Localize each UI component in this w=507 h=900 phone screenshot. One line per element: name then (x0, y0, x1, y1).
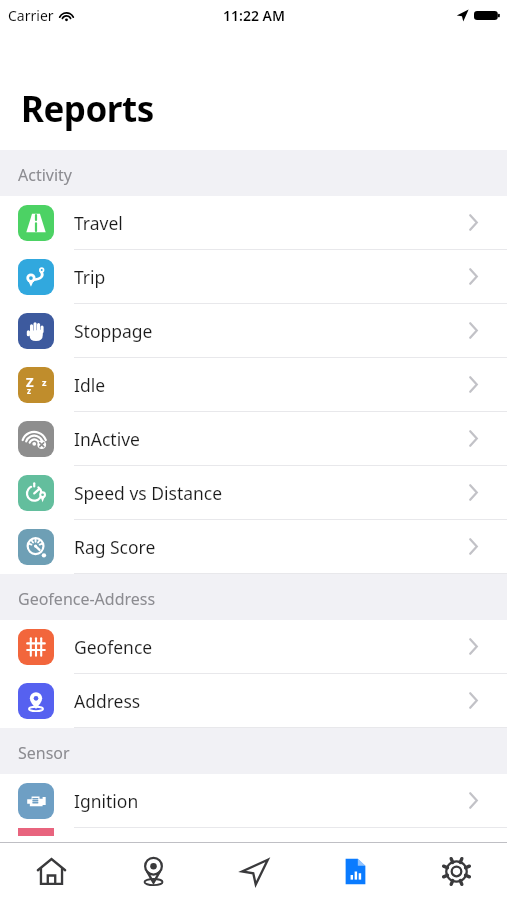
staticText: z (42, 376, 47, 388)
button[interactable]: InActive (0, 412, 507, 466)
staticText: Activity (18, 164, 73, 186)
staticText: 11:22 AM (223, 6, 285, 25)
staticText: Travel (74, 211, 123, 235)
staticText: Geofence (74, 635, 153, 659)
button[interactable]: Rag Score (0, 520, 507, 574)
staticText: Z (26, 373, 34, 391)
button[interactable]: Home (0, 843, 102, 900)
staticText: Stoppage (74, 319, 153, 343)
staticText: Sensor (18, 742, 70, 764)
button[interactable] (0, 828, 507, 836)
staticText: Address (74, 689, 141, 713)
staticText: Idle (74, 373, 106, 397)
staticText: Speed vs Distance (74, 481, 223, 505)
staticText: Reports (21, 85, 154, 133)
staticText: Carrier (8, 6, 54, 25)
button[interactable]: Address (0, 674, 507, 728)
button[interactable]: Settings (406, 843, 507, 900)
button[interactable]: Trip (0, 250, 507, 304)
staticText: InActive (74, 427, 140, 451)
button[interactable]: Travel (0, 196, 507, 250)
button[interactable]: Speed vs Distance (0, 466, 507, 520)
button[interactable]: Map (102, 843, 204, 900)
button[interactable]: Z (0, 358, 507, 412)
button[interactable]: Navigate (204, 843, 305, 900)
button[interactable]: Geofence (0, 620, 507, 674)
staticText: z (27, 385, 31, 396)
staticText: Ignition (74, 789, 139, 813)
button[interactable]: Ignition (0, 774, 507, 828)
staticText: Trip (74, 265, 106, 289)
button[interactable]: Stoppage (0, 304, 507, 358)
staticText: Geofence-Address (18, 588, 156, 610)
staticText: Rag Score (74, 535, 156, 559)
button[interactable]: Reports (305, 843, 406, 900)
